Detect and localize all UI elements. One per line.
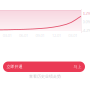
staticText: 4.2%: [82, 10, 90, 16]
staticText: 查看历史业绩走势: [29, 74, 61, 79]
staticText: 09-01: [35, 33, 44, 38]
staticText: 06-01: [19, 33, 28, 38]
staticText: 马上: [73, 64, 81, 69]
button[interactable]: 立即开通: [3, 61, 85, 72]
staticText: 03-01: [68, 33, 77, 38]
staticText: 12-01: [52, 33, 61, 38]
staticText: -4.2%: [82, 27, 90, 33]
staticText: 0.0%: [82, 19, 90, 24]
staticText: 立即开通: [6, 64, 22, 69]
staticText: 03-01: [3, 33, 12, 38]
